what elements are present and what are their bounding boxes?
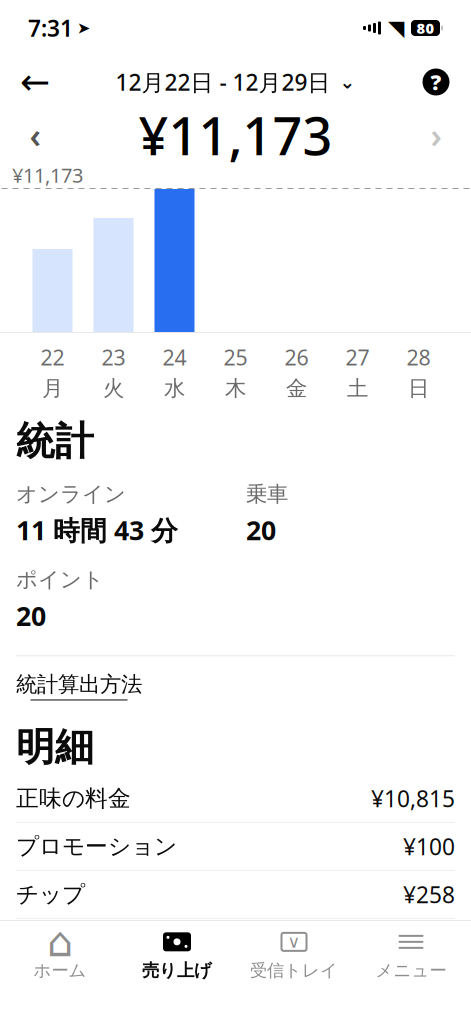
staticText: ¥11,173 [138, 100, 332, 170]
staticText: 23 [101, 343, 125, 371]
button[interactable]: メニュー [352, 921, 469, 981]
staticText: 27 [345, 343, 369, 371]
staticText: ? [430, 68, 441, 96]
staticText: 金 [286, 375, 307, 401]
staticText: 火 [103, 375, 124, 401]
button[interactable]: 戻る [13, 60, 57, 104]
staticText: 26 [284, 343, 308, 371]
staticText: 土 [347, 375, 368, 401]
staticText: 受信トレイ [250, 960, 338, 981]
staticText: ⌄ [339, 71, 355, 93]
staticText: 80 [416, 18, 434, 38]
staticText: 7:31 [28, 13, 73, 43]
staticText: 20 [246, 512, 276, 548]
staticText: ホーム [33, 960, 86, 981]
staticText: ¥258 [403, 879, 455, 909]
staticText: 売り上げ [142, 960, 212, 981]
staticText: ➤ [77, 19, 90, 37]
staticText: 統計 [16, 417, 94, 465]
staticText: メニュー [375, 960, 446, 981]
staticText: 木 [225, 375, 246, 401]
button[interactable]: 売り上げ [118, 921, 235, 981]
staticText: ¥11,173 [12, 162, 83, 188]
staticText: 月 [42, 375, 63, 401]
button[interactable]: ヘルプ [414, 60, 458, 104]
staticText: プロモーション [16, 832, 177, 860]
button[interactable]: 統計算出方法 [16, 656, 455, 715]
button[interactable]: 次の週 [414, 113, 458, 157]
staticText: ← [20, 62, 50, 102]
button[interactable]: ⌂ [1, 921, 118, 981]
staticText: 12月22日 - 12月29日 [115, 67, 330, 97]
button[interactable]: ∨ [235, 921, 352, 981]
staticText: 日 [408, 375, 429, 401]
staticText: 明細 [16, 723, 94, 771]
staticText: 25 [223, 343, 247, 371]
staticText: 11 時間 43 分 [16, 512, 178, 548]
staticText: オンライン [16, 481, 126, 507]
staticText: ¥100 [403, 831, 455, 861]
staticText: 20 [16, 598, 46, 633]
staticText: 正味の料金 [16, 784, 131, 812]
staticText: 統計算出方法 [16, 671, 142, 697]
staticText: ‹ [29, 113, 40, 157]
staticText: ポイント [16, 567, 104, 593]
staticText: 28 [406, 343, 430, 371]
staticText: › [430, 113, 441, 157]
staticText: ∨ [287, 932, 300, 952]
staticText: 水 [164, 375, 185, 401]
staticText: 24 [162, 343, 186, 371]
button[interactable]: 前の週 [13, 113, 57, 157]
staticText: ⌂ [47, 918, 73, 965]
button[interactable]: 12月22日 - 12月29日 [109, 60, 361, 104]
staticText: ◥ [388, 16, 404, 40]
staticText: 22 [40, 343, 64, 371]
staticText: ¥10,815 [371, 783, 455, 813]
staticText: 乗車 [246, 481, 288, 507]
staticText: チップ [16, 880, 85, 908]
